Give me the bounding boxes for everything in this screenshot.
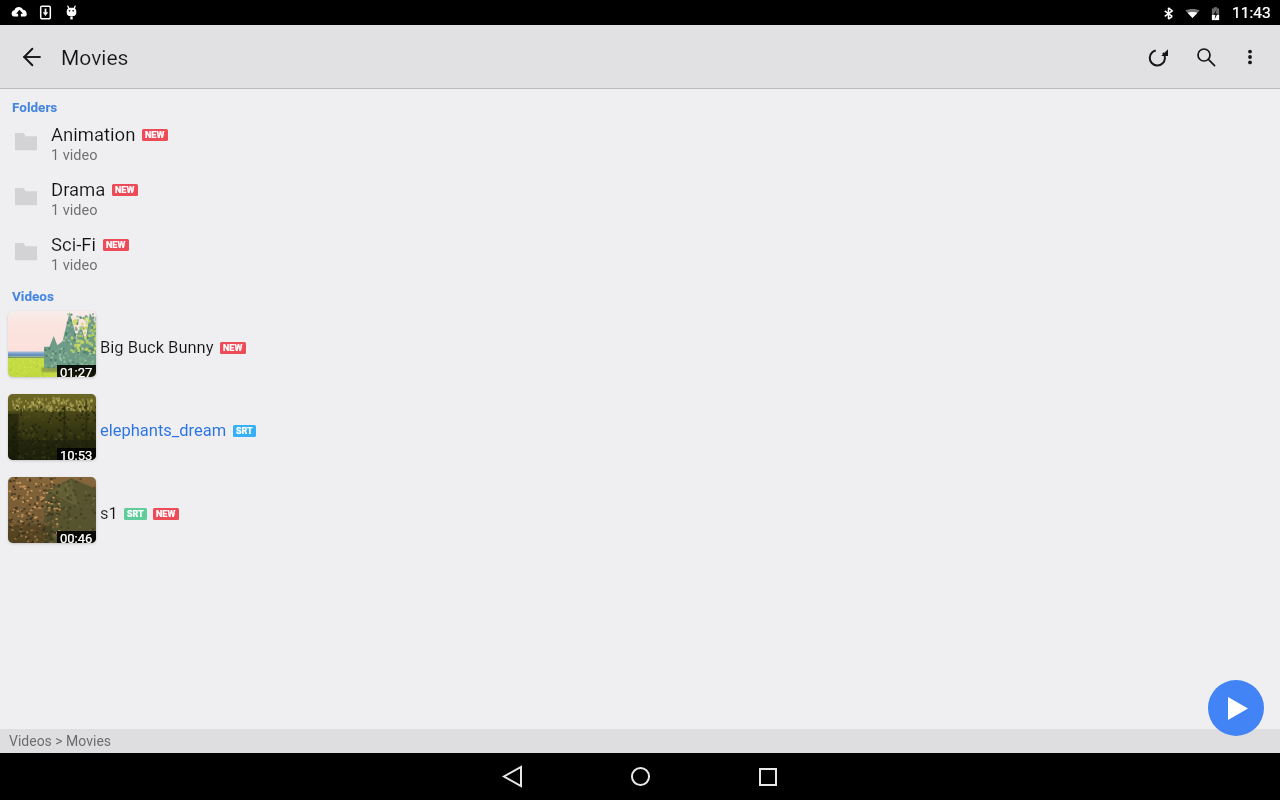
staticText: NEW <box>223 343 243 354</box>
button[interactable]: Home <box>576 753 704 800</box>
button[interactable]: 01:27 <box>0 302 1280 385</box>
button[interactable]: Recents <box>704 753 832 800</box>
staticText: s1 <box>100 504 118 523</box>
staticText: 1 video <box>51 202 98 219</box>
staticText: 01:27 <box>60 365 93 377</box>
staticText: Drama <box>51 179 106 201</box>
button[interactable]: Sci-Fi <box>0 223 1280 278</box>
staticText: SRT <box>236 426 253 437</box>
button[interactable]: 10:53 <box>0 385 1280 468</box>
button[interactable]: Videos > Movies <box>0 729 1280 753</box>
staticText: Animation <box>51 124 136 146</box>
staticText: 1 video <box>51 147 98 164</box>
staticText: Big Buck Bunny <box>100 338 214 357</box>
staticText: elephants_dream <box>100 421 227 440</box>
button[interactable]: Drama <box>0 168 1280 223</box>
staticText: NEW <box>115 185 135 196</box>
staticText: NEW <box>145 130 165 141</box>
button[interactable]: 00:46 <box>0 468 1280 551</box>
staticText: 10:53 <box>60 448 93 460</box>
staticText: NEW <box>156 509 176 520</box>
staticText: 00:46 <box>60 531 93 543</box>
staticText: Videos <box>12 288 54 302</box>
staticText: 11:43 <box>1232 4 1271 22</box>
button[interactable]: Animation <box>0 113 1280 168</box>
button[interactable]: Search <box>1182 33 1230 81</box>
staticText: Folders <box>12 99 58 113</box>
button[interactable]: Play <box>1208 680 1264 736</box>
staticText: SRT <box>127 509 144 520</box>
staticText: Movies <box>61 46 129 71</box>
staticText: NEW <box>106 240 126 251</box>
button[interactable]: Refresh <box>1134 33 1182 81</box>
button[interactable]: More options <box>1230 37 1270 77</box>
staticText: Sci-Fi <box>51 234 97 256</box>
button[interactable]: Back <box>9 34 55 80</box>
staticText: 1 video <box>51 257 98 274</box>
staticText: Videos > Movies <box>9 733 112 749</box>
button[interactable]: Back <box>448 753 576 800</box>
